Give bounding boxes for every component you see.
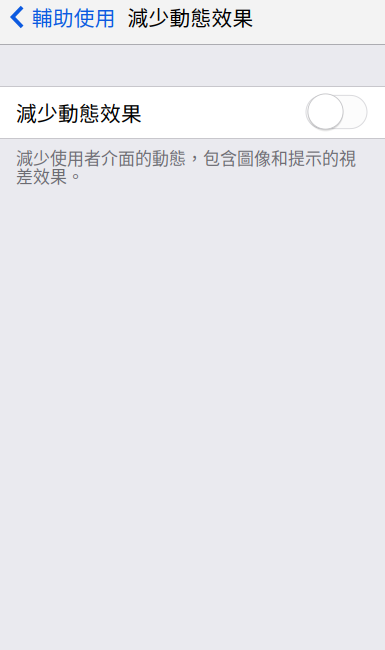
button[interactable]: 減少動態效果 (0, 86, 385, 139)
staticText: 輔助使用 (32, 2, 116, 32)
staticText: 減少動態效果 (16, 97, 142, 127)
staticText: 減少使用者介面的動態，包含圖像和提示的視差效果。 (16, 145, 356, 188)
staticText: 減少動態效果 (127, 2, 253, 32)
button[interactable]: 輔助使用 (0, 0, 124, 34)
